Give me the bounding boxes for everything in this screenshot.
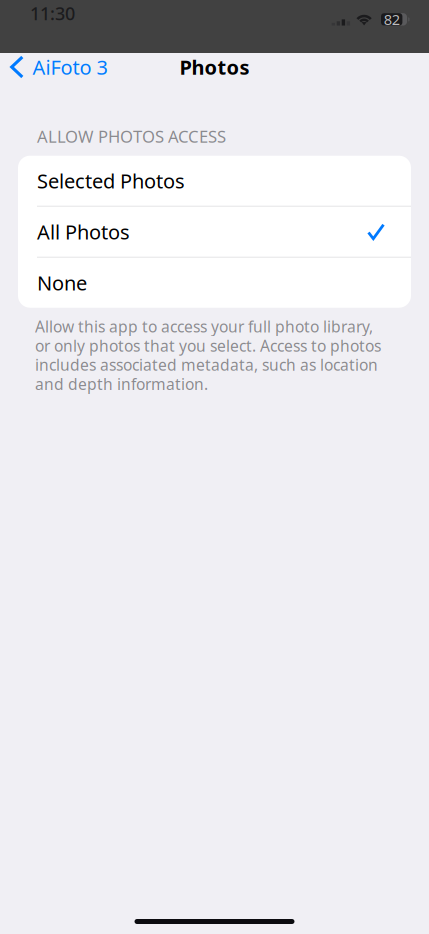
staticText: Allow this app to access your full photo… [35,316,381,395]
button[interactable]: All Photos [18,207,411,257]
staticText: 82 [384,9,400,29]
staticText: ALLOW PHOTOS ACCESS [37,125,226,148]
staticText: Selected Photos [37,167,185,194]
button[interactable]: Selected Photos [18,156,411,206]
staticText: All Photos [37,218,130,245]
staticText: None [37,269,87,296]
button[interactable]: None [18,258,411,308]
staticText: AiFoto 3 [32,54,107,80]
staticText: Photos [179,54,249,80]
button[interactable]: AiFoto 3 [0,47,115,87]
staticText: 11:30 [30,1,75,25]
